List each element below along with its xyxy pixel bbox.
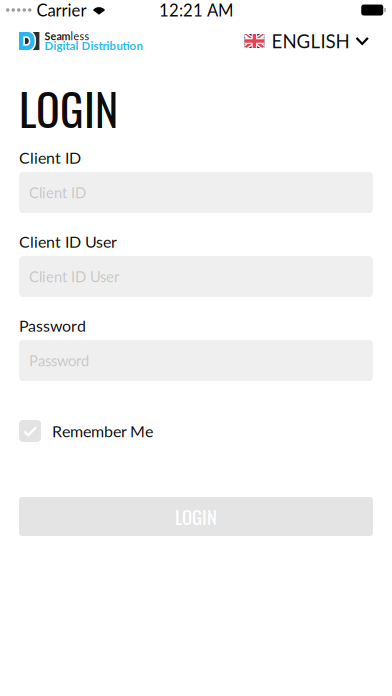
staticText: Seamless [44,30,89,42]
staticText: Remember Me [52,421,153,441]
staticText: Carrier [36,0,86,20]
staticText: LOGIN [175,503,217,530]
staticText: Client ID [19,148,81,167]
staticText: 12:21 AM [159,0,233,20]
staticText: Password [19,316,86,335]
staticText: LOGIN [19,75,118,141]
staticText: Client ID User [19,232,117,251]
staticText: Client ID User [29,268,119,285]
staticText: Digital Distribution [44,39,142,52]
staticText: Password [29,352,89,369]
button[interactable]: LOGIN [19,497,373,536]
staticText: Client ID [29,184,86,201]
staticText: ENGLISH [271,30,349,52]
button[interactable]: Remember Me [19,420,373,442]
button[interactable]: ENGLISH [244,30,369,52]
